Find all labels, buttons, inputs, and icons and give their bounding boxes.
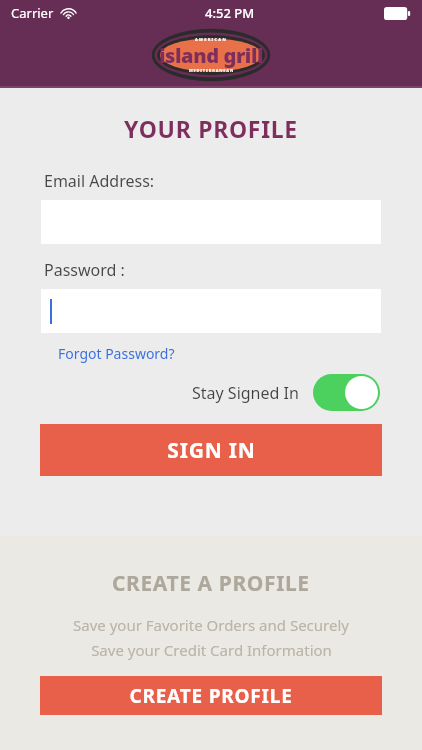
button[interactable]: Password input — [41, 289, 381, 333]
button[interactable]: Forgot Password? — [58, 344, 175, 363]
staticText: MEDITERRANEAN — [189, 68, 234, 73]
staticText: Password : — [44, 259, 125, 281]
staticText: CREATE PROFILE — [129, 683, 293, 709]
staticText: Email Address: — [44, 170, 155, 192]
staticText: CREATE A PROFILE — [112, 569, 310, 598]
staticText: island grill — [159, 42, 264, 69]
staticText: Forgot Password? — [58, 344, 175, 363]
other: Battery full — [384, 7, 411, 20]
button[interactable]: CREATE PROFILE — [40, 676, 382, 715]
other: Wi-Fi signal — [60, 7, 77, 19]
staticText: AMERICAN — [195, 37, 227, 42]
button[interactable]: Stay Signed In toggle, on — [313, 374, 380, 411]
staticText: SIGN IN — [167, 436, 256, 465]
button[interactable]: SIGN IN — [40, 424, 382, 476]
staticText: Save your Favorite Orders and Securely — [73, 615, 349, 635]
staticText: Stay Signed In — [192, 382, 299, 404]
staticText: 4:52 PM — [205, 4, 255, 22]
staticText: YOUR PROFILE — [0, 113, 422, 144]
staticText: Save your Credit Card Information — [91, 640, 332, 660]
staticText: Carrier — [11, 4, 54, 22]
